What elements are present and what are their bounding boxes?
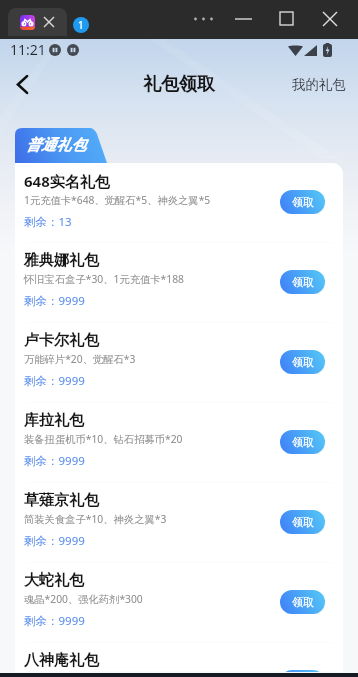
staticText: 领取 <box>292 355 314 369</box>
staticText: 库拉礼包 <box>24 411 84 430</box>
button[interactable]: Maximize <box>265 0 308 38</box>
button[interactable]: 大蛇礼包 <box>15 563 343 643</box>
staticText: 雅典娜礼包 <box>24 251 99 270</box>
button[interactable]: Close window <box>308 0 351 38</box>
button[interactable]: Minimize <box>222 0 265 38</box>
staticText: 领取 <box>292 515 314 529</box>
button[interactable]: 领取 <box>280 510 325 534</box>
button[interactable]: 领取 <box>280 590 325 614</box>
staticText: 八神庵礼包 <box>24 651 99 670</box>
staticText: 怀旧宝石盒子*30、1元充值卡*188 <box>24 272 184 286</box>
button[interactable]: Back <box>0 62 44 106</box>
staticText: 领取 <box>292 195 314 209</box>
staticText: 剩余：9999 <box>24 613 85 629</box>
staticText: 万能碎片*20、觉醒石*3 <box>24 352 136 366</box>
staticText: 简装关食盒子*10、神炎之翼*3 <box>24 512 167 526</box>
button[interactable]: Close tab <box>8 8 67 36</box>
button[interactable]: 雅典娜礼包 <box>15 243 343 323</box>
staticText: 剩余：9999 <box>24 373 85 389</box>
staticText: 大蛇礼包 <box>24 571 84 590</box>
staticText: 领取 <box>292 435 314 449</box>
button[interactable]: More options <box>182 0 222 38</box>
staticText: 剩余：13 <box>24 214 72 230</box>
button[interactable]: 领取 <box>280 270 325 294</box>
button[interactable]: 领取 <box>280 190 325 214</box>
staticText: 1 <box>78 18 84 32</box>
button[interactable]: 我的礼包 <box>292 76 346 93</box>
button[interactable]: 1 <box>73 17 89 33</box>
button[interactable]: 普通礼包 <box>15 128 107 163</box>
button[interactable]: 八神庵礼包 <box>15 643 343 672</box>
button[interactable]: 卢卡尔礼包 <box>15 323 343 403</box>
button[interactable]: 库拉礼包 <box>15 403 343 483</box>
staticText: 普通礼包 <box>26 136 86 155</box>
staticText: 剩余：9999 <box>24 533 85 549</box>
staticText: 卢卡尔礼包 <box>24 331 99 350</box>
staticText: 剩余：9999 <box>24 293 85 309</box>
staticText: 草薙京礼包 <box>24 491 99 510</box>
staticText: 1元充值卡*648、觉醒石*5、神炎之翼*5 <box>24 193 211 207</box>
staticText: 装备扭蛋机币*10、钻石招募币*20 <box>24 432 183 446</box>
button[interactable]: 领取 <box>280 670 325 672</box>
staticText: 648实名礼包 <box>24 171 110 191</box>
button[interactable]: 领取 <box>280 430 325 454</box>
staticText: 领取 <box>292 595 314 609</box>
button[interactable]: 648实名礼包 <box>15 163 343 243</box>
button[interactable]: 领取 <box>280 350 325 374</box>
staticText: 礼包领取 <box>143 73 215 96</box>
other: Close tab <box>44 17 54 27</box>
staticText: 领取 <box>292 275 314 289</box>
staticText: 剩余：9999 <box>24 453 85 469</box>
staticText: 11:21 <box>10 40 46 59</box>
button[interactable]: 草薙京礼包 <box>15 483 343 563</box>
staticText: 魂晶*200、强化药剂*300 <box>24 592 143 606</box>
staticText: 我的礼包 <box>292 76 346 93</box>
